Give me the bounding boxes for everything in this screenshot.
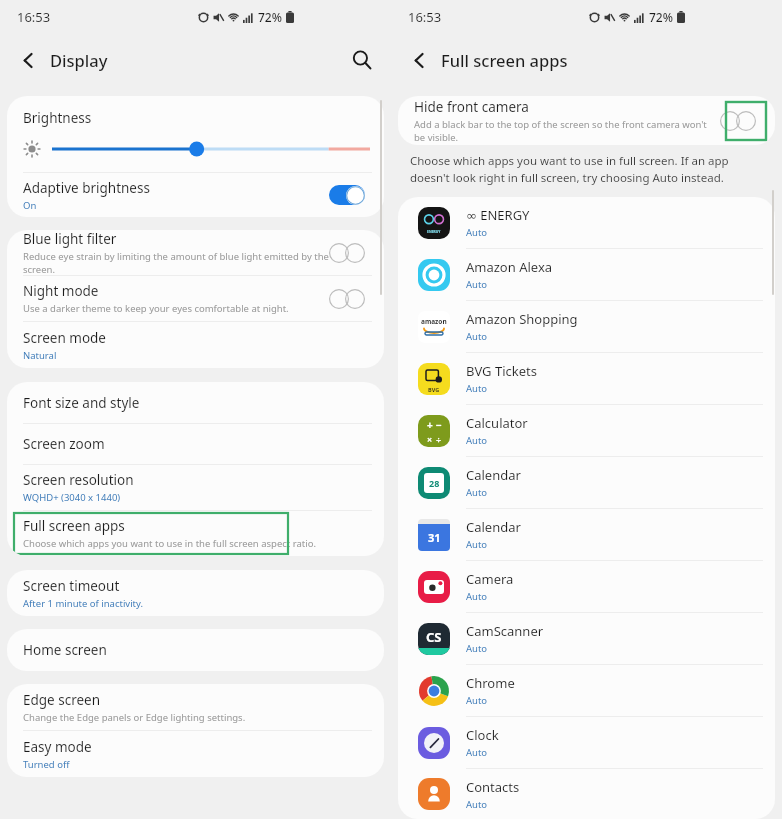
staticText: Use a darker theme to keep your eyes com…: [23, 302, 289, 315]
button[interactable]: Easy mode: [7, 731, 384, 777]
staticText: CamScanner: [466, 622, 544, 640]
staticText: Turned off: [23, 758, 70, 771]
staticText: Calculator: [466, 414, 528, 432]
staticText: Font size and style: [23, 394, 140, 412]
button[interactable]: ENERGY: [398, 197, 775, 248]
staticText: Screen zoom: [23, 435, 105, 453]
staticText: Auto: [466, 798, 488, 811]
button[interactable]: Search: [345, 43, 379, 77]
staticText: Hide front camera: [414, 98, 529, 116]
button[interactable]: +: [398, 405, 775, 456]
staticText: 72%: [649, 9, 673, 25]
button[interactable]: BVG: [398, 353, 775, 404]
staticText: Auto: [466, 642, 488, 655]
button[interactable]: Contacts: [398, 769, 775, 819]
staticText: Auto: [466, 278, 488, 291]
staticText: Auto: [466, 486, 488, 499]
staticText: +: [427, 418, 433, 432]
staticText: Auto: [466, 382, 488, 395]
staticText: Reduce eye strain by limiting the amount…: [23, 250, 329, 275]
staticText: Easy mode: [23, 738, 92, 756]
button[interactable]: Night mode: [7, 276, 384, 321]
staticText: Full screen apps: [23, 517, 125, 535]
button[interactable]: Edge screen: [7, 684, 384, 730]
staticText: WQHD+ (3040 x 1440): [23, 491, 121, 504]
staticText: Auto: [466, 538, 488, 551]
staticText: On: [23, 199, 37, 212]
staticText: Auto: [466, 694, 488, 707]
staticText: Auto: [466, 226, 488, 239]
button[interactable]: Screen mode: [7, 322, 384, 368]
staticText: Night mode: [23, 282, 99, 300]
staticText: Auto: [466, 590, 488, 603]
staticText: Blue light filter: [23, 230, 117, 248]
staticText: Add a black bar to the top of the screen…: [414, 118, 720, 143]
staticText: Display: [50, 49, 108, 71]
button[interactable]: Back: [403, 44, 435, 76]
staticText: 16:53: [408, 8, 442, 26]
staticText: Screen mode: [23, 329, 106, 347]
button[interactable]: Brightness: [7, 96, 384, 172]
button[interactable]: Camera: [398, 561, 775, 612]
staticText: Auto: [466, 330, 488, 343]
staticText: Choose which apps you want to use in the…: [23, 537, 316, 550]
button[interactable]: Font size and style: [7, 382, 384, 423]
button[interactable]: 31: [398, 509, 775, 560]
staticText: Chrome: [466, 674, 515, 692]
staticText: Natural: [23, 349, 57, 362]
staticText: −: [436, 418, 442, 432]
staticText: Screen resolution: [23, 471, 134, 489]
staticText: 28: [429, 477, 440, 489]
staticText: Change the Edge panels or Edge lighting …: [23, 711, 246, 724]
staticText: Camera: [466, 570, 514, 588]
button[interactable]: Clock: [398, 717, 775, 768]
staticText: Auto: [466, 434, 488, 447]
staticText: 31: [428, 530, 441, 545]
button[interactable]: Adaptive brightness: [7, 173, 384, 217]
button[interactable]: Screen resolution: [7, 465, 384, 510]
staticText: Amazon Alexa: [466, 258, 553, 276]
staticText: Full screen apps: [441, 49, 568, 71]
button[interactable]: Full screen apps: [7, 511, 384, 556]
staticText: Calendar: [466, 518, 521, 536]
button[interactable]: Blue light filter: [7, 230, 384, 275]
staticText: ENERGY: [427, 229, 441, 234]
staticText: Clock: [466, 726, 499, 744]
button[interactable]: Home screen: [7, 629, 384, 671]
staticText: ×: [427, 433, 433, 445]
button[interactable]: Amazon Alexa: [398, 249, 775, 300]
button[interactable]: CS: [398, 613, 775, 664]
staticText: BVG Tickets: [466, 362, 537, 380]
staticText: Edge screen: [23, 691, 101, 709]
staticText: ÷: [436, 433, 442, 445]
staticText: amazon: [421, 317, 447, 326]
staticText: Home screen: [23, 641, 107, 659]
staticText: Contacts: [466, 778, 520, 796]
staticText: Auto: [466, 746, 488, 759]
staticText: Choose which apps you want to use in ful…: [410, 153, 763, 185]
staticText: BVG: [428, 386, 440, 393]
button[interactable]: Screen timeout: [7, 570, 384, 616]
button[interactable]: amazon: [398, 301, 775, 352]
staticText: Amazon Shopping: [466, 310, 578, 328]
button[interactable]: Hide front camera: [398, 96, 775, 145]
button[interactable]: Screen zoom: [7, 424, 384, 464]
staticText: 16:53: [17, 8, 51, 26]
button[interactable]: Back: [12, 44, 44, 76]
button[interactable]: Chrome: [398, 665, 775, 716]
staticText: CS: [426, 628, 442, 646]
staticText: 72%: [258, 9, 282, 25]
button[interactable]: 28: [398, 457, 775, 508]
staticText: ∞ ENERGY: [466, 206, 530, 224]
staticText: Adaptive brightness: [23, 179, 150, 197]
staticText: Calendar: [466, 466, 521, 484]
staticText: Brightness: [23, 109, 92, 127]
staticText: After 1 minute of inactivity.: [23, 597, 144, 610]
staticText: Screen timeout: [23, 577, 120, 595]
